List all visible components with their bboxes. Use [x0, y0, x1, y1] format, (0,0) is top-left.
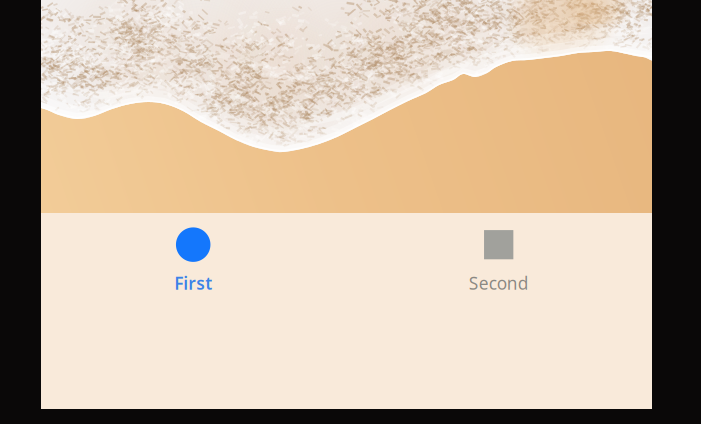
staticText: First	[174, 271, 212, 294]
button[interactable]: Second	[345, 213, 652, 409]
button[interactable]: First	[41, 213, 345, 409]
staticText: Second	[469, 272, 529, 295]
